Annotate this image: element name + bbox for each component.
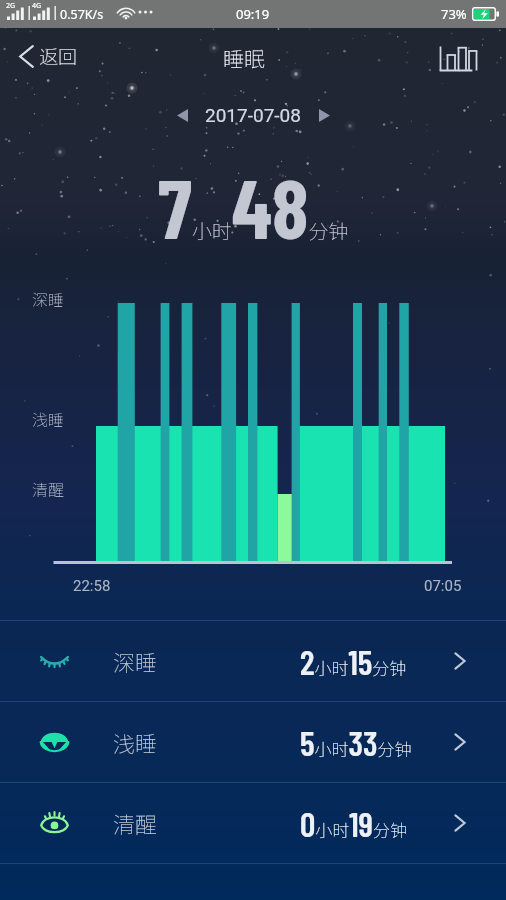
staticText: 7小时48分钟 <box>158 156 349 256</box>
staticText: 0.57K/s <box>60 6 104 23</box>
staticText: 浅睡 <box>113 726 158 758</box>
staticText: 4G <box>32 1 42 11</box>
button[interactable]: Statistics <box>433 39 479 77</box>
staticText: 2小时15分钟 <box>300 641 407 682</box>
staticText: 返回 <box>39 42 78 70</box>
staticText: 0小时19分钟 <box>300 803 407 844</box>
staticText: 5小时33分钟 <box>300 722 412 763</box>
button[interactable]: 清醒 <box>0 783 506 863</box>
staticText: 2017-07-08 <box>205 104 301 126</box>
button[interactable]: 返回 <box>9 36 92 76</box>
staticText: 清醒 <box>113 807 158 839</box>
staticText: 09:19 <box>236 5 270 23</box>
button[interactable]: 浅睡 <box>0 702 506 782</box>
staticText: 73% <box>441 5 467 23</box>
staticText: 清醒 <box>32 477 65 500</box>
staticText: 2G <box>6 1 16 11</box>
staticText: 22:58 <box>73 577 111 595</box>
staticText: 07:05 <box>424 577 462 595</box>
staticText: 睡眠 <box>223 43 265 73</box>
staticText: 深睡 <box>113 645 158 677</box>
staticText: 深睡 <box>32 287 65 310</box>
button[interactable]: Previous day <box>166 99 198 131</box>
button[interactable]: Next day <box>308 99 340 131</box>
button[interactable]: 深睡 <box>0 621 506 701</box>
staticText: 浅睡 <box>32 407 65 430</box>
